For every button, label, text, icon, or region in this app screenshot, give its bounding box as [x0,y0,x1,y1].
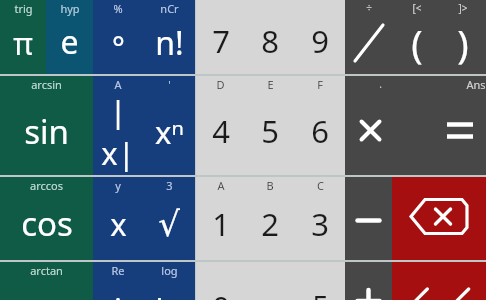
staticText: F [317,77,323,92]
staticText: i [114,288,122,300]
button[interactable]: A [93,76,143,175]
staticText: cos [21,201,73,246]
button[interactable]: 3 [143,177,195,260]
button[interactable]: . [345,76,416,175]
staticText: arcsin [31,77,62,92]
staticText: hyp [60,1,80,16]
staticText: sin [24,109,69,154]
staticText: . [379,77,382,91]
staticText: √ [158,204,180,244]
staticText: A [217,178,225,193]
button[interactable]: A [196,177,245,260]
button[interactable]: 7 [196,0,245,74]
staticText: 5 [261,110,279,152]
staticText: ]> [458,1,468,15]
staticText: nCr [160,1,179,16]
staticText: 8 [261,20,279,62]
staticText: 2 [261,203,279,245]
staticText: ln [155,288,183,300]
staticText: arctan [30,263,63,278]
staticText: 6 [311,110,329,152]
staticText: E [312,287,328,300]
staticText: A [114,77,122,92]
staticText: n! [155,21,184,65]
staticText: π [13,23,33,64]
staticText: E [267,77,274,92]
button[interactable] [345,177,392,260]
button[interactable]: 0 [196,262,245,300]
button[interactable]: [< [393,0,440,74]
staticText: ° [112,27,125,68]
staticText: Re [111,263,125,278]
button[interactable]: nCr [143,0,195,74]
button[interactable]: B [245,177,295,260]
button[interactable]: ]> [440,0,486,74]
button[interactable]: arctan [0,262,93,300]
staticText: ' [168,77,171,92]
button[interactable]: % [93,0,143,74]
staticText: trig [14,1,33,16]
staticText: B [266,178,274,193]
button[interactable]: log [143,262,195,300]
staticText: 9 [311,20,329,62]
staticText: 0 [212,286,230,300]
button[interactable]: Re [93,262,143,300]
staticText: ) [457,17,469,69]
staticText: % [113,1,123,16]
button[interactable]: D [196,76,245,175]
staticText: 3 [311,203,329,245]
button[interactable]: ÷ [345,0,393,74]
staticText: C [317,178,324,193]
button[interactable]: Delete [392,177,486,260]
staticText: 7 [212,20,230,62]
button[interactable]: arccos [0,177,93,260]
button[interactable]: ' [143,76,195,175]
staticText: |x| [93,90,143,174]
button[interactable]: F [295,76,345,175]
button[interactable]: arcsin [0,76,93,175]
button[interactable]: 8 [245,0,295,74]
staticText: arccos [30,178,63,193]
staticText: y [115,178,121,193]
button[interactable]: trig [0,0,46,74]
staticText: 1 [212,203,230,245]
staticText: Ans [466,77,486,92]
staticText: ÷ [366,1,372,15]
staticText: e [60,20,79,64]
button[interactable]: E [245,76,295,175]
button[interactable]: Ans [416,76,486,175]
button[interactable]: y [93,177,143,260]
button[interactable]: hyp [46,0,93,74]
staticText: 4 [212,110,230,152]
staticText: x [110,203,127,245]
staticText: 3 [166,178,173,193]
button[interactable]: Clear [392,262,486,300]
button[interactable]: E [295,262,345,300]
staticText: D [216,77,225,92]
button[interactable]: 9 [295,0,345,74]
button[interactable]: C [295,177,345,260]
staticText: xⁿ [155,111,184,153]
button[interactable] [345,262,392,300]
staticText: log [161,263,178,278]
staticText: [< [412,1,422,15]
staticText: ( [411,17,423,69]
